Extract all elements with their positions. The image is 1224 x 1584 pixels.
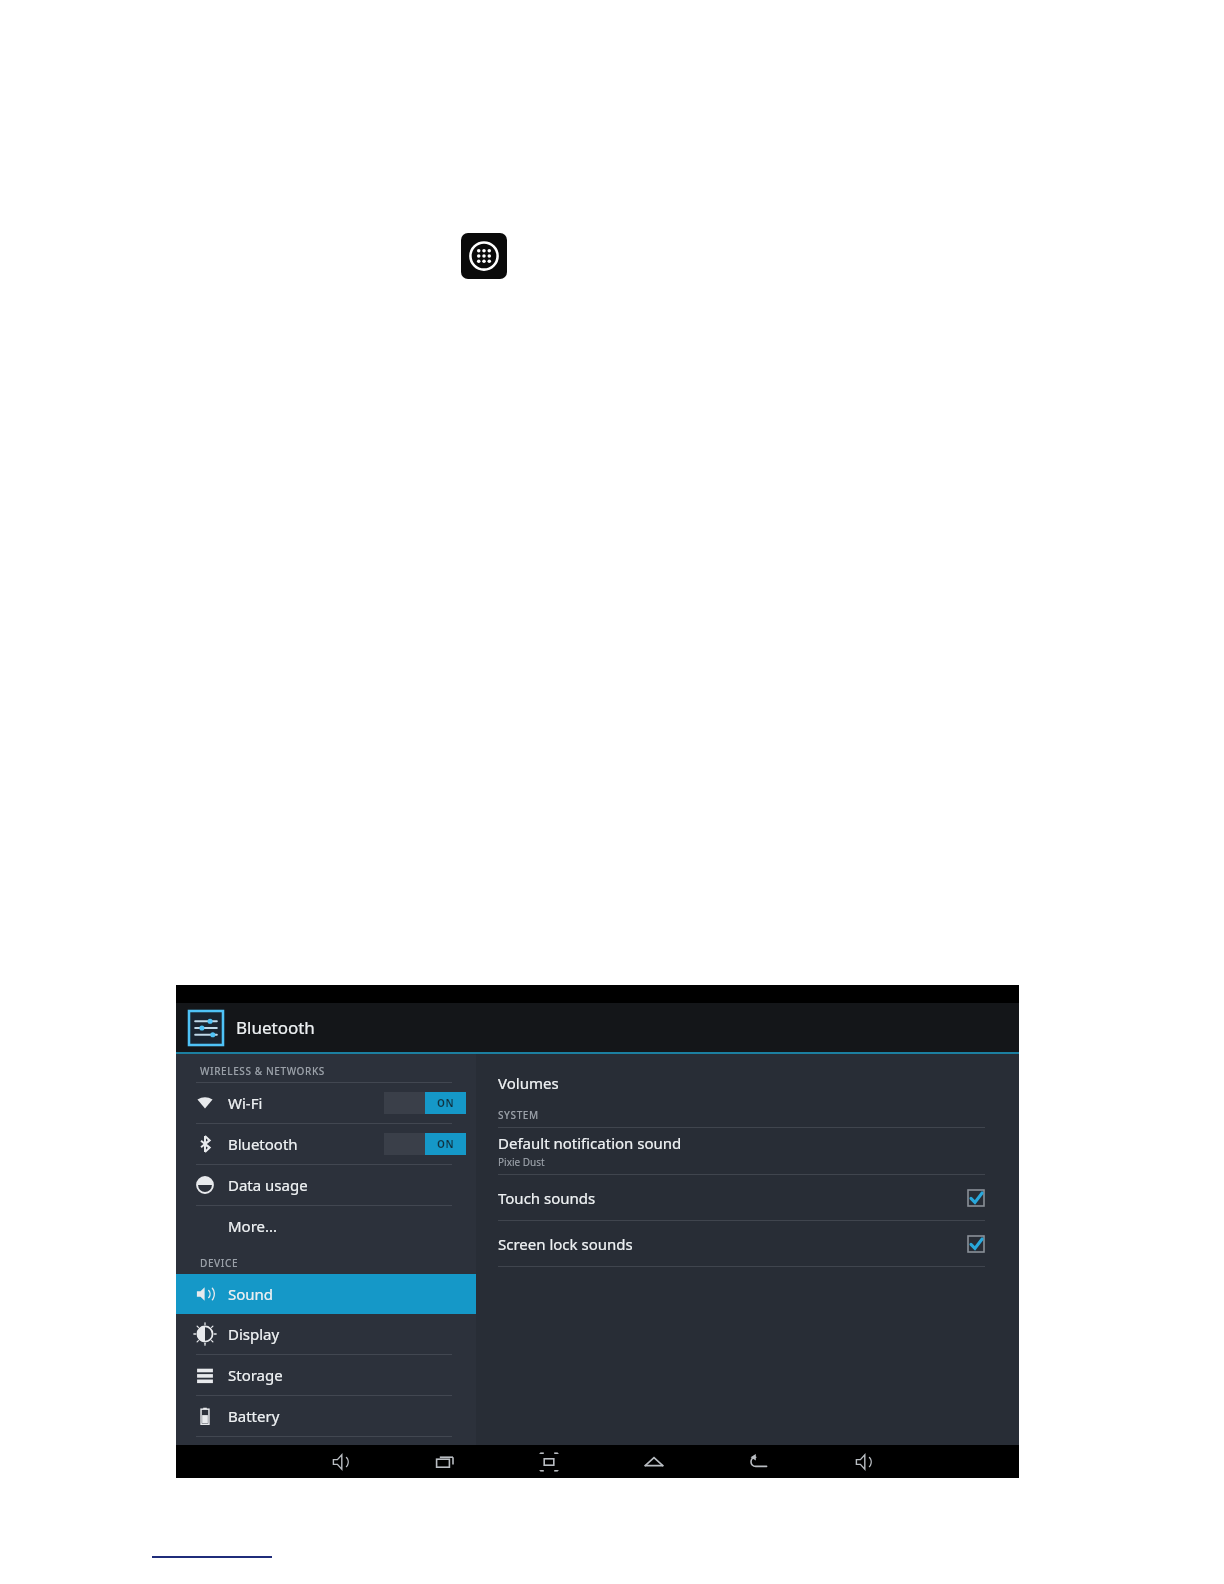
staticText: Volumes bbox=[498, 1073, 559, 1093]
staticText: WIRELESS & NETWORKS bbox=[200, 1064, 325, 1078]
staticText: More... bbox=[228, 1216, 278, 1236]
staticText: Wi-Fi bbox=[228, 1093, 263, 1113]
staticText: Data usage bbox=[228, 1175, 308, 1195]
button[interactable]: Battery bbox=[176, 1396, 476, 1436]
staticText: Default notification sound bbox=[498, 1133, 682, 1153]
button[interactable]: Wi-Fi bbox=[176, 1083, 476, 1123]
button[interactable]: Volumes bbox=[498, 1066, 985, 1100]
button[interactable]: Bluetooth bbox=[176, 1124, 476, 1164]
staticText: DEVICE bbox=[200, 1256, 239, 1270]
button[interactable]: Volume down bbox=[316, 1445, 366, 1478]
button[interactable]: Sound bbox=[176, 1274, 476, 1314]
button[interactable]: Screenshot bbox=[524, 1445, 574, 1478]
button[interactable]: Back bbox=[734, 1445, 784, 1478]
staticText: Pixie Dust bbox=[498, 1155, 545, 1169]
staticText: ON bbox=[437, 1096, 455, 1110]
staticText: Sound bbox=[228, 1284, 274, 1304]
staticText: Screen lock sounds bbox=[498, 1234, 633, 1254]
staticText: Touch sounds bbox=[498, 1188, 596, 1208]
button[interactable]: Recent apps bbox=[420, 1445, 470, 1478]
staticText: Display bbox=[228, 1324, 280, 1344]
button[interactable]: Data usage bbox=[176, 1165, 476, 1205]
button[interactable]: Home bbox=[629, 1445, 679, 1478]
staticText: SYSTEM bbox=[498, 1108, 539, 1122]
button[interactable]: On bbox=[384, 1133, 466, 1155]
staticText: ON bbox=[437, 1137, 455, 1151]
button[interactable]: On bbox=[384, 1092, 466, 1114]
staticText: Battery bbox=[228, 1406, 280, 1426]
button[interactable]: Touch sounds bbox=[498, 1175, 985, 1220]
button[interactable]: More... bbox=[176, 1206, 476, 1246]
staticText: Storage bbox=[228, 1365, 283, 1385]
button[interactable]: Screen lock sounds bbox=[498, 1221, 985, 1266]
button[interactable]: Volume up bbox=[839, 1445, 889, 1478]
button[interactable]: Default notification sound bbox=[498, 1128, 985, 1174]
button[interactable]: Apps bbox=[461, 233, 507, 279]
staticText: Bluetooth bbox=[228, 1134, 298, 1154]
staticText: Bluetooth bbox=[236, 1016, 315, 1039]
button[interactable]: Settings bbox=[188, 1010, 224, 1046]
button[interactable]: Display bbox=[176, 1314, 476, 1354]
button[interactable]: Storage bbox=[176, 1355, 476, 1395]
